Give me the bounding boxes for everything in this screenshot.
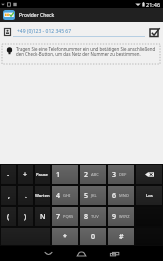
staticText: ): [24, 212, 27, 222]
staticText: DEF: [119, 172, 127, 177]
staticText: 0: [91, 232, 96, 242]
staticText: GHI: [63, 193, 71, 198]
staticText: 3: [112, 170, 117, 180]
staticText: 4: [56, 191, 61, 201]
staticText: 2: [84, 170, 89, 180]
staticText: Pause: [36, 172, 49, 178]
staticText: Tragen Sie eine Telefonnummer ein und be…: [16, 46, 157, 57]
staticText: Los: [146, 193, 153, 199]
staticText: +49 (0)123 - 012 345 67: [17, 28, 72, 35]
staticText: ABC: [91, 172, 99, 177]
button[interactable]: -: [1, 165, 16, 184]
staticText: Provider Check: [19, 12, 55, 19]
staticText: -: [7, 170, 10, 180]
button[interactable]: 5: [80, 186, 106, 205]
staticText: 1: [56, 170, 61, 180]
staticText: (: [7, 212, 10, 222]
button[interactable]: 7: [52, 207, 78, 226]
staticText: N: [40, 212, 46, 222]
button[interactable]: Provider Check: [0, 8, 163, 22]
button[interactable]: Home: [65, 246, 98, 261]
staticText: +: [23, 170, 28, 180]
button[interactable]: Los: [136, 186, 162, 205]
staticText: 8: [84, 212, 89, 222]
button[interactable]: #: [108, 228, 134, 245]
button[interactable]: Recent apps: [98, 246, 131, 261]
staticText: #: [119, 232, 124, 242]
staticText: JKL: [91, 193, 97, 198]
staticText: *: [63, 232, 67, 242]
button[interactable]: .: [18, 186, 33, 205]
button[interactable]: Hide keyboard: [32, 246, 65, 261]
button[interactable]: 1: [52, 165, 78, 184]
button[interactable]: Pause: [35, 165, 50, 184]
staticText: 5: [84, 191, 89, 201]
staticText: MNO: [119, 193, 129, 198]
staticText: 6: [112, 191, 117, 201]
staticText: WXYZ: [119, 214, 130, 219]
button[interactable]: 0: [80, 228, 106, 245]
button[interactable]: Check: [149, 27, 160, 38]
button[interactable]: 6: [108, 186, 134, 205]
staticText: Warten: [35, 193, 50, 199]
staticText: 7: [56, 212, 61, 222]
staticText: ,: [8, 191, 10, 201]
staticText: 9: [112, 212, 117, 222]
button[interactable]: N: [35, 207, 50, 226]
button[interactable]: *: [52, 228, 78, 245]
button[interactable]: 9: [108, 207, 134, 226]
staticText: PQRS: [63, 214, 74, 219]
button[interactable]: ): [18, 207, 33, 226]
button[interactable]: 8: [80, 207, 106, 226]
button[interactable]: 2: [80, 165, 106, 184]
staticText: 21:46: [146, 1, 161, 8]
staticText: TUV: [91, 214, 99, 219]
button[interactable]: (: [1, 207, 16, 226]
button[interactable]: Warten: [35, 186, 50, 205]
button[interactable]: 4: [52, 186, 78, 205]
button[interactable]: Pick contact: [4, 28, 11, 36]
button[interactable]: [136, 165, 162, 184]
button[interactable]: +: [18, 165, 33, 184]
button[interactable]: 3: [108, 165, 134, 184]
button[interactable]: ,: [1, 186, 16, 205]
staticText: .: [25, 191, 27, 201]
